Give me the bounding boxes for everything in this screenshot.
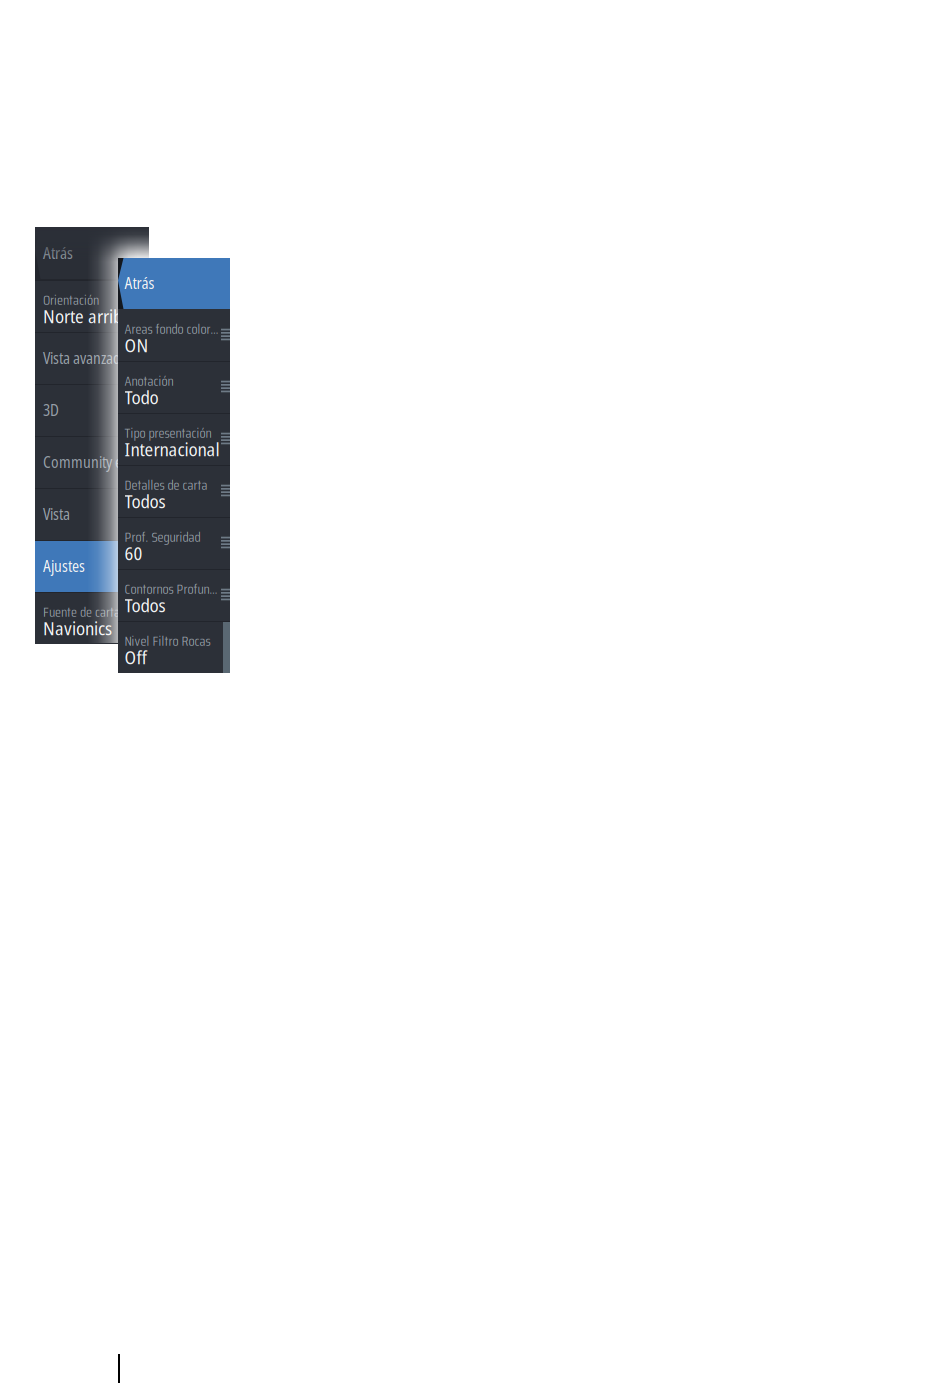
staticText: Areas fondo colorea… (124, 318, 221, 340)
staticText: Contornos Profundi… (124, 578, 221, 600)
staticText: Vista avanzada (43, 348, 128, 368)
button[interactable]: Ajustes (35, 540, 149, 592)
staticText: Orientación (43, 289, 99, 311)
staticText: Navionics (43, 615, 112, 641)
staticText: Off (124, 644, 146, 670)
button[interactable]: Nivel Filtro Rocas (118, 621, 230, 673)
button[interactable]: Atrás (35, 227, 149, 280)
staticText: Atrás (43, 243, 73, 263)
button[interactable]: Prof. Seguridad (118, 517, 230, 569)
staticText: Ajustes (43, 556, 85, 576)
staticText: Prof. Seguridad (124, 526, 200, 548)
staticText: Fuente de carta (43, 601, 120, 623)
button[interactable]: Tipo presentación (118, 413, 230, 465)
button[interactable]: Detalles de carta (118, 465, 230, 517)
staticText: 60 (124, 540, 142, 566)
button[interactable]: Atrás (118, 258, 230, 309)
staticText: Tipo presentación (124, 422, 211, 444)
button[interactable]: Vista avanzada (35, 332, 149, 384)
staticText: Anotación (124, 370, 173, 392)
staticText: Todo (124, 384, 158, 410)
button[interactable]: Contornos Profundi… (118, 569, 230, 621)
staticText: Vista (43, 504, 70, 524)
staticText: Todos (124, 488, 165, 514)
staticText: ON (124, 332, 148, 358)
button[interactable]: Fuente de carta (35, 592, 149, 644)
button[interactable]: Areas fondo colorea… (118, 309, 230, 361)
button[interactable]: Orientación (35, 280, 149, 332)
staticText: Atrás (124, 273, 154, 293)
button[interactable]: 3D (35, 384, 149, 436)
button[interactable]: Community edits (35, 436, 149, 488)
staticText: Norte arriba (43, 303, 131, 329)
staticText: Community edits (43, 452, 143, 472)
staticText: Nivel Filtro Rocas (124, 630, 210, 652)
button[interactable]: Anotación (118, 361, 230, 413)
button[interactable]: Vista (35, 488, 149, 540)
staticText: Internacional (124, 436, 219, 462)
staticText: Detalles de carta (124, 474, 207, 496)
staticText: Todos (124, 592, 165, 618)
staticText: 3D (43, 400, 59, 420)
